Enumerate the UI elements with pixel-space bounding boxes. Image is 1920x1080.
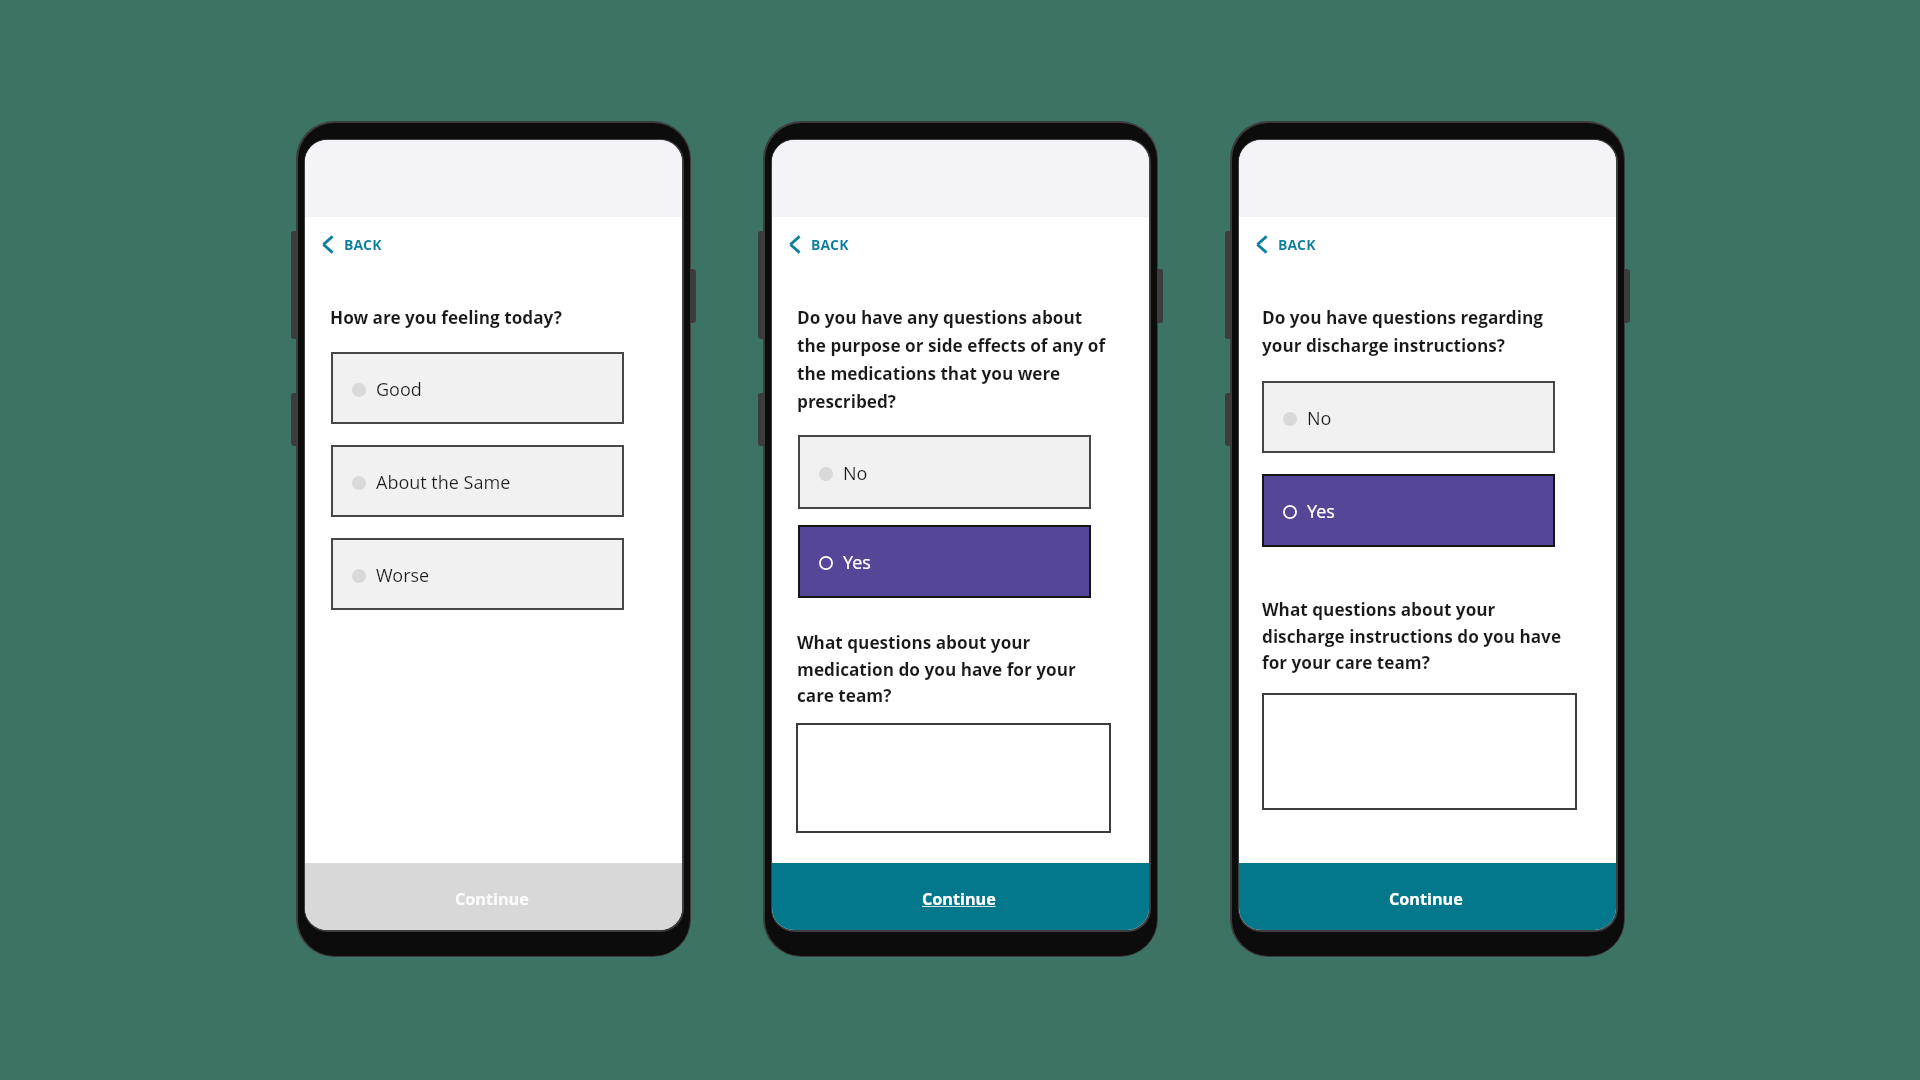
staticText: Continue	[1389, 888, 1463, 910]
staticText: How are you feeling today?	[330, 306, 562, 329]
staticText: Continue	[455, 888, 529, 910]
button[interactable]: Answer text field	[796, 723, 1111, 833]
staticText: BACK	[1278, 235, 1316, 254]
button[interactable]: Yes	[1262, 474, 1555, 547]
button[interactable]: Continue	[305, 863, 682, 930]
staticText: What questions about your discharge inst…	[1262, 598, 1562, 674]
staticText: Do you have questions regarding your dis…	[1262, 306, 1543, 357]
button[interactable]: No	[1262, 381, 1555, 453]
staticText: Continue	[922, 888, 996, 910]
staticText: No	[843, 461, 868, 486]
button[interactable]: Back	[785, 229, 853, 260]
staticText: Do you have any questions about the purp…	[797, 306, 1106, 413]
button[interactable]: Good	[331, 352, 624, 424]
button[interactable]: Back	[1252, 229, 1320, 260]
staticText: BACK	[344, 235, 382, 254]
button[interactable]: Worse	[331, 538, 624, 610]
staticText: BACK	[811, 235, 849, 254]
button[interactable]: Back	[318, 229, 386, 260]
button[interactable]: Continue	[1239, 863, 1616, 930]
staticText: Good	[376, 377, 422, 402]
button[interactable]: Answer text field	[1262, 693, 1577, 810]
button[interactable]: Yes	[798, 525, 1091, 598]
staticText: About the Same	[376, 470, 511, 495]
staticText: No	[1307, 406, 1332, 431]
button[interactable]: About the Same	[331, 445, 624, 517]
button[interactable]: Continue	[772, 863, 1149, 930]
button[interactable]: No	[798, 435, 1091, 509]
staticText: Yes	[1307, 499, 1335, 524]
staticText: Worse	[376, 563, 430, 588]
staticText: Yes	[843, 550, 871, 575]
staticText: What questions about your medication do …	[797, 631, 1076, 707]
